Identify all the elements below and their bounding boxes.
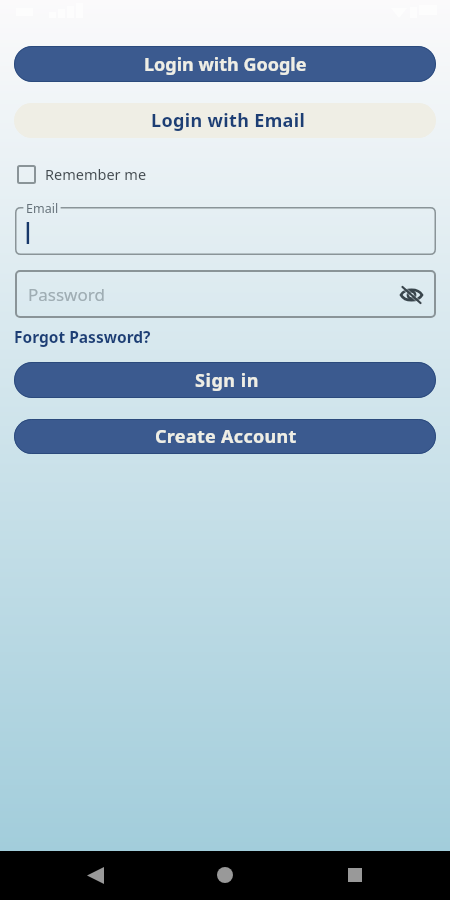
button[interactable]: Back	[71, 851, 119, 899]
button[interactable]: Login with Google	[14, 46, 436, 82]
staticText: Email	[26, 200, 59, 217]
button[interactable]: Password	[15, 270, 436, 318]
button[interactable]: Recents	[331, 851, 379, 899]
staticText: Remember me	[45, 164, 147, 184]
button[interactable]: Create Account	[14, 419, 436, 454]
button[interactable]: Remember me	[14, 161, 150, 187]
staticText: Login with Google	[144, 52, 307, 77]
staticText: Sign in	[195, 368, 259, 393]
button[interactable]: Sign in	[14, 362, 436, 398]
staticText: Forgot Password?	[14, 326, 151, 347]
button[interactable]: Home	[201, 851, 249, 899]
staticText: Login with Email	[151, 108, 306, 133]
button[interactable]: Login with Email	[14, 103, 436, 138]
button[interactable]: Show password	[398, 280, 426, 308]
staticText: Password	[28, 283, 105, 306]
staticText: Create Account	[155, 424, 297, 449]
button[interactable]: Email	[15, 207, 436, 255]
button[interactable]: Forgot Password?	[11, 323, 154, 350]
